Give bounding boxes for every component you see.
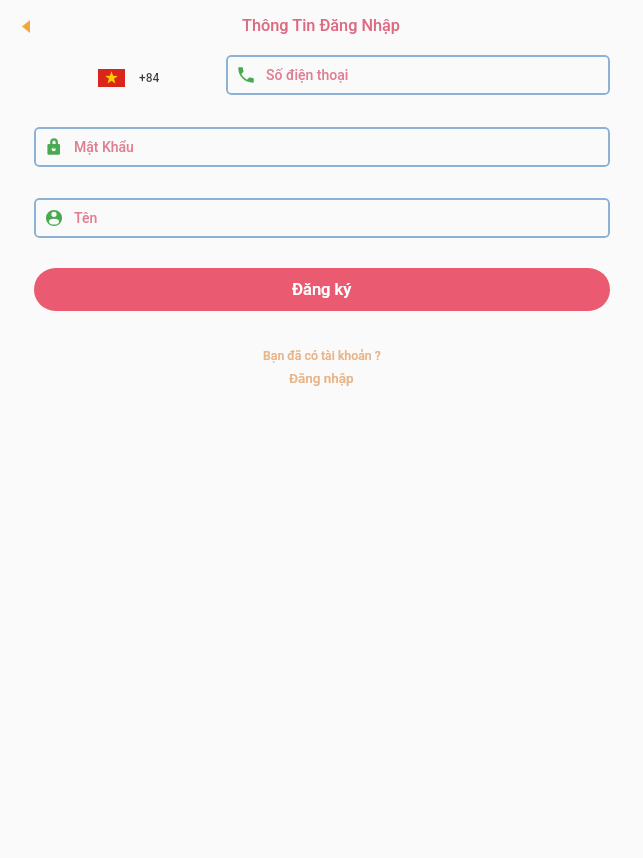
staticText: Đăng nhập — [289, 370, 354, 386]
staticText: Bạn đã có tài khoản ? — [263, 349, 381, 363]
staticText: Số điện thoại — [266, 67, 349, 83]
staticText: +84 — [139, 71, 160, 85]
staticText: Tên — [74, 210, 98, 226]
button[interactable]: Đăng nhập — [275, 364, 368, 392]
button[interactable]: Đăng ký — [34, 268, 610, 311]
staticText: Mật Khẩu — [74, 139, 134, 155]
staticText: Thông Tin Đăng Nhập — [242, 16, 401, 35]
button[interactable]: Tên — [34, 198, 610, 238]
button[interactable]: Country code Vietnam +84 — [92, 60, 166, 96]
button[interactable]: Bạn đã có tài khoản ? — [249, 343, 395, 369]
button[interactable]: Số điện thoại — [226, 55, 610, 95]
staticText: Đăng ký — [292, 280, 352, 299]
button[interactable]: Back — [11, 12, 40, 41]
button[interactable]: Mật Khẩu — [34, 127, 610, 167]
